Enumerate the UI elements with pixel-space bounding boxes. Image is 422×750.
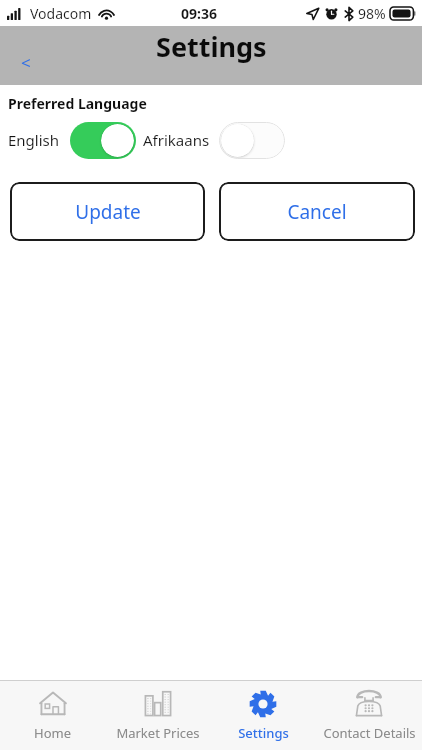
- staticText: Update: [75, 199, 141, 225]
- button[interactable]: Contact Details: [316, 681, 422, 742]
- staticText: <: [21, 51, 31, 74]
- button[interactable]: Market Prices: [105, 681, 210, 742]
- button[interactable]: Home: [0, 681, 105, 742]
- staticText: Contact Details: [323, 724, 416, 742]
- button[interactable]: Afrikaans: [219, 122, 285, 159]
- staticText: Market Prices: [116, 724, 200, 742]
- button[interactable]: Cancel: [219, 182, 415, 241]
- button[interactable]: Settings: [210, 681, 316, 742]
- staticText: 09:36: [181, 4, 217, 23]
- staticText: Home: [34, 724, 71, 742]
- staticText: Vodacom: [30, 4, 92, 23]
- staticText: 98%: [358, 4, 386, 23]
- staticText: Settings: [156, 28, 267, 65]
- button[interactable]: English selected: [70, 122, 136, 159]
- staticText: Preferred Language: [8, 94, 147, 113]
- button[interactable]: Update: [10, 182, 205, 241]
- staticText: Settings: [238, 724, 289, 742]
- staticText: English: [8, 130, 60, 150]
- button[interactable]: Back: [6, 42, 46, 82]
- staticText: Cancel: [287, 199, 347, 225]
- staticText: Afrikaans: [143, 130, 210, 150]
